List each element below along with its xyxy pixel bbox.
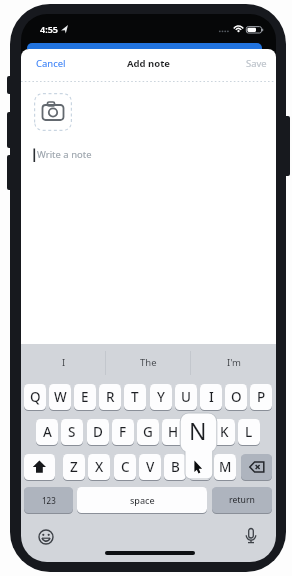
button[interactable] bbox=[241, 454, 272, 480]
staticText: Add note bbox=[127, 57, 170, 70]
button[interactable]: U bbox=[175, 384, 197, 410]
button[interactable]: The bbox=[106, 350, 191, 375]
staticText: space bbox=[130, 494, 155, 506]
staticText: Y bbox=[157, 388, 165, 406]
button[interactable]: I bbox=[21, 350, 106, 375]
staticText: Q bbox=[30, 388, 41, 406]
button[interactable]: Cancel bbox=[30, 55, 72, 71]
staticText: A bbox=[43, 423, 52, 441]
button[interactable]: C bbox=[114, 454, 136, 480]
button[interactable]: I'm bbox=[191, 350, 276, 375]
button[interactable]: K bbox=[213, 419, 235, 445]
button[interactable]: S bbox=[61, 419, 83, 445]
button[interactable]: Y bbox=[150, 384, 172, 410]
staticText: The bbox=[140, 356, 157, 369]
button[interactable] bbox=[34, 93, 72, 131]
button[interactable]: F bbox=[112, 419, 134, 445]
staticText: R bbox=[106, 388, 115, 406]
button[interactable]: T bbox=[124, 384, 146, 410]
button[interactable]: P bbox=[250, 384, 272, 410]
staticText: Save bbox=[246, 57, 267, 70]
button[interactable]: Save bbox=[238, 55, 274, 71]
staticText: F bbox=[119, 423, 127, 441]
staticText: I bbox=[62, 356, 66, 369]
staticText: K bbox=[220, 423, 229, 441]
staticText: M bbox=[219, 458, 232, 476]
button[interactable]: Q bbox=[24, 384, 46, 410]
staticText: O bbox=[231, 388, 242, 406]
staticText: 123 bbox=[42, 495, 56, 506]
button[interactable] bbox=[24, 454, 55, 480]
button[interactable]: L bbox=[238, 419, 260, 445]
staticText: B bbox=[171, 458, 180, 476]
button[interactable]: space bbox=[77, 487, 207, 513]
staticText: S bbox=[68, 423, 76, 441]
button[interactable]: B bbox=[164, 454, 186, 480]
button[interactable]: H bbox=[162, 419, 184, 445]
staticText: Z bbox=[70, 458, 78, 476]
button[interactable]: J bbox=[187, 419, 209, 445]
staticText: G bbox=[143, 423, 153, 441]
button[interactable]: O bbox=[225, 384, 247, 410]
button[interactable]: N bbox=[189, 454, 211, 480]
staticText: E bbox=[81, 388, 89, 406]
button[interactable]: X bbox=[88, 454, 110, 480]
staticText: N bbox=[189, 415, 207, 446]
staticText: H bbox=[168, 423, 179, 441]
staticText: P bbox=[257, 388, 266, 406]
button[interactable] bbox=[34, 525, 58, 549]
button[interactable]: M bbox=[214, 454, 236, 480]
button[interactable]: V bbox=[139, 454, 161, 480]
staticText: V bbox=[146, 458, 155, 476]
staticText: Write a note bbox=[37, 148, 92, 161]
staticText: 4:55 bbox=[40, 23, 58, 35]
staticText: L bbox=[245, 423, 253, 441]
staticText: D bbox=[93, 423, 103, 441]
button[interactable]: R bbox=[99, 384, 121, 410]
button[interactable]: 123 bbox=[24, 487, 73, 513]
staticText: I'm bbox=[227, 356, 241, 369]
button[interactable]: E bbox=[74, 384, 96, 410]
staticText: U bbox=[181, 388, 191, 406]
button[interactable]: I bbox=[200, 384, 222, 410]
button[interactable]: G bbox=[137, 419, 159, 445]
button[interactable] bbox=[239, 524, 263, 548]
button[interactable] bbox=[33, 143, 153, 167]
button[interactable]: W bbox=[49, 384, 71, 410]
staticText: X bbox=[95, 458, 104, 476]
staticText: return bbox=[229, 494, 255, 506]
button[interactable]: A bbox=[36, 419, 58, 445]
staticText: N bbox=[195, 458, 206, 476]
staticText: J bbox=[196, 423, 200, 441]
staticText: Cancel bbox=[36, 57, 66, 70]
staticText: T bbox=[131, 388, 139, 406]
staticText: C bbox=[121, 458, 130, 476]
button[interactable]: return bbox=[212, 487, 272, 513]
staticText: I bbox=[209, 388, 214, 406]
staticText: W bbox=[54, 388, 67, 406]
button[interactable]: Z bbox=[63, 454, 85, 480]
button[interactable]: D bbox=[87, 419, 109, 445]
